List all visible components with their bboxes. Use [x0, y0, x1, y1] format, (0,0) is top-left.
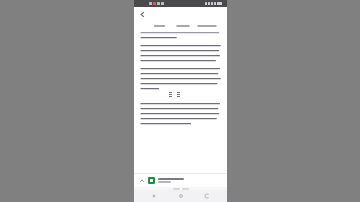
- button[interactable]: Home: [174, 190, 188, 202]
- button[interactable]: Back: [200, 190, 214, 202]
- button[interactable]: [195, 21, 219, 30]
- other: Expand: [138, 177, 145, 184]
- button[interactable]: Expand: [134, 174, 227, 187]
- button[interactable]: [148, 21, 171, 30]
- button[interactable]: [171, 21, 195, 30]
- button[interactable]: Recents: [147, 190, 161, 202]
- button[interactable]: Back: [137, 9, 148, 20]
